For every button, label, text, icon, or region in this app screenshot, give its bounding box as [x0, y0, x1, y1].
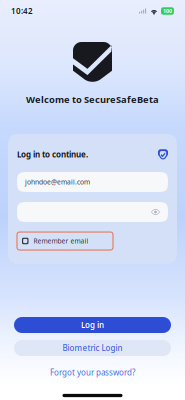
button[interactable]: Log in — [14, 317, 171, 333]
staticText: johndoe@email.com — [25, 178, 90, 186]
staticText: Remember email — [33, 237, 88, 245]
staticText: 10:42 — [11, 6, 33, 16]
button[interactable]: Biometric Login — [14, 340, 171, 356]
staticText: Forgot your password? — [50, 367, 135, 378]
staticText: 100 — [163, 7, 172, 15]
button[interactable]: Forgot your password? — [50, 367, 135, 378]
button[interactable]: Remember email — [17, 232, 168, 250]
staticText: Welcome to SecureSafeBeta — [26, 93, 159, 106]
staticText: Biometric Login — [62, 343, 122, 353]
staticText: Log in — [81, 320, 104, 330]
staticText: Log in to continue. — [17, 149, 88, 160]
